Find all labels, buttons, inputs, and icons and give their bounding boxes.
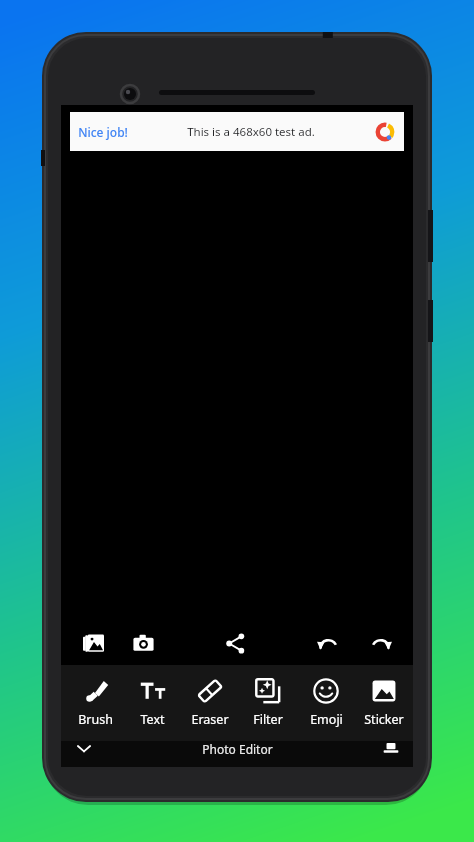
other: Collapse [75,741,93,759]
other: Save [383,741,399,757]
button[interactable]: Filter [239,665,297,741]
staticText: Photo Editor [202,741,273,757]
button[interactable]: Collapse [61,741,413,767]
button[interactable]: Emoji [297,665,355,741]
button[interactable]: Text [124,665,181,741]
staticText: Filter [253,711,283,728]
button[interactable]: Brush [67,665,124,741]
staticText: Nice job! [78,124,128,140]
staticText: This is a 468x60 test ad. [187,124,315,140]
button[interactable]: Gallery [77,627,109,659]
button[interactable]: Eraser [181,665,239,741]
staticText: Text [140,711,165,728]
button[interactable]: Redo [365,627,397,659]
staticText: Brush [78,711,113,728]
staticText: Sticker [364,711,404,728]
button[interactable]: Share [219,627,251,659]
button[interactable]: Undo [311,627,343,659]
staticText: Eraser [191,711,229,728]
button[interactable]: Nice job! [70,112,404,151]
staticText: Emoji [310,711,343,728]
button[interactable]: Sticker [355,665,413,741]
button[interactable]: Camera [127,627,159,659]
